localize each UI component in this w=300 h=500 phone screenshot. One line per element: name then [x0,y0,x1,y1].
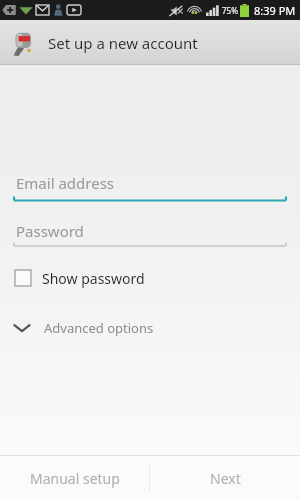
button[interactable]: Expand advanced options [0,313,300,343]
other: Expand advanced options [12,321,32,335]
button[interactable]: Show password [0,263,300,293]
staticText: Email address [16,173,115,193]
button[interactable]: Password [0,218,300,249]
staticText: Next [210,469,241,488]
staticText: Advanced options [44,319,154,337]
staticText: Show password [42,269,145,288]
staticText: Password [16,221,84,241]
button[interactable]: Manual setup [0,456,149,500]
button[interactable]: Next [150,456,300,500]
staticText: 8:39 PM [254,3,296,18]
button[interactable]: Email address [0,168,300,204]
staticText: 75% [222,5,238,16]
staticText: Manual setup [30,469,120,488]
staticText: Set up a new account [48,33,198,53]
